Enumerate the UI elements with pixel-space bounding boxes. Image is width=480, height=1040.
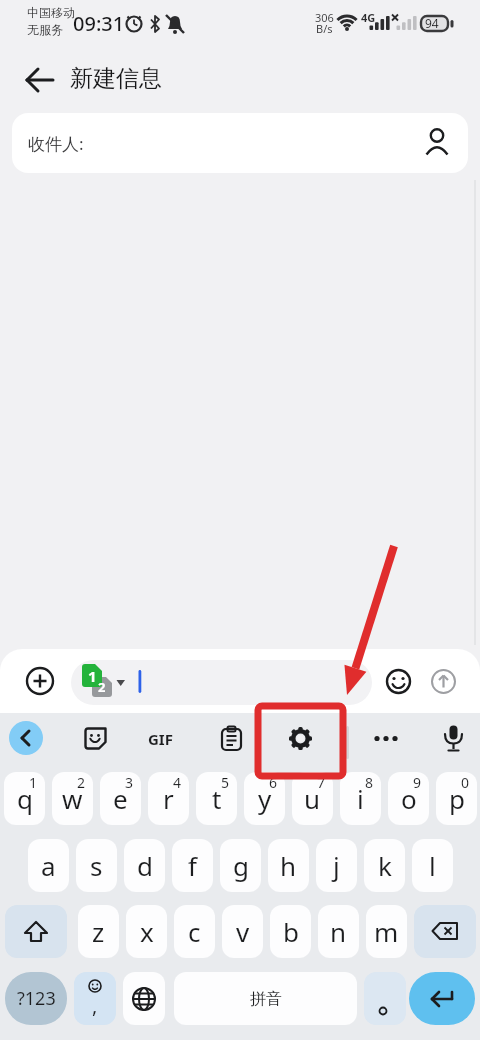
button[interactable] <box>289 727 312 750</box>
staticText: m <box>374 914 399 949</box>
button[interactable] <box>414 905 476 958</box>
staticText: r <box>163 781 174 816</box>
staticText: 6 <box>269 773 278 792</box>
staticText: 4 <box>173 773 182 792</box>
staticText: 收件人: <box>28 132 84 155</box>
staticText: GIF <box>148 729 173 749</box>
staticText: f <box>188 848 197 883</box>
button[interactable]: a <box>28 839 69 892</box>
button[interactable]: , <box>74 972 116 1025</box>
staticText: x <box>140 914 154 949</box>
button[interactable]: t <box>196 772 237 825</box>
staticText: q <box>17 781 33 816</box>
staticText: t <box>212 781 222 816</box>
button[interactable]: z <box>78 905 119 958</box>
staticText: u <box>304 781 321 816</box>
staticText: s <box>90 848 103 883</box>
staticText: 94 <box>425 15 439 31</box>
staticText: 306 <box>315 10 334 25</box>
staticText: d <box>137 848 153 883</box>
staticText: 09:31 <box>73 10 125 37</box>
button[interactable]: j <box>316 839 357 892</box>
button[interactable]: s <box>76 839 117 892</box>
staticText: h <box>280 848 297 883</box>
staticText: 9 <box>413 773 422 792</box>
button[interactable]: q <box>4 772 45 825</box>
button[interactable] <box>431 669 456 694</box>
button[interactable]: y <box>244 772 285 825</box>
button[interactable]: e <box>100 772 141 825</box>
staticText: 新建信息 <box>70 64 162 93</box>
button[interactable]: GIF <box>148 729 173 749</box>
button[interactable]: w <box>52 772 93 825</box>
staticText: 5 <box>221 773 230 792</box>
staticText: e <box>113 781 128 816</box>
button[interactable] <box>220 726 243 751</box>
staticText: w <box>62 781 83 816</box>
staticText: i <box>357 781 364 816</box>
button[interactable] <box>84 727 107 750</box>
button[interactable]: h <box>268 839 309 892</box>
button[interactable] <box>443 725 464 752</box>
button[interactable]: k <box>364 839 405 892</box>
button[interactable] <box>364 972 406 1025</box>
button[interactable]: b <box>270 905 311 958</box>
button[interactable] <box>5 905 67 958</box>
button[interactable] <box>26 667 54 695</box>
button[interactable]: r <box>148 772 189 825</box>
button[interactable]: f <box>172 839 213 892</box>
staticText: 无服务 <box>27 22 63 37</box>
staticText: 2 <box>98 678 106 696</box>
button[interactable]: o <box>388 772 429 825</box>
staticText: 7 <box>317 773 326 792</box>
button[interactable]: i <box>340 772 381 825</box>
staticText: o <box>401 781 417 816</box>
staticText: 拼音 <box>250 989 282 1009</box>
staticText: 1 <box>29 773 38 792</box>
button[interactable]: 1 <box>71 660 372 705</box>
staticText: 0 <box>461 773 470 792</box>
staticText: p <box>449 781 465 816</box>
button[interactable]: d <box>124 839 165 892</box>
staticText: n <box>330 914 347 949</box>
staticText: z <box>92 914 105 949</box>
button[interactable] <box>9 721 43 755</box>
button[interactable]: ?123 <box>5 972 67 1025</box>
staticText: 2 <box>77 773 86 792</box>
button[interactable]: m <box>366 905 407 958</box>
button[interactable] <box>386 669 411 694</box>
button[interactable]: 收件人: <box>12 113 468 173</box>
staticText: c <box>188 914 201 949</box>
staticText: , <box>92 992 98 1019</box>
staticText: k <box>378 848 392 883</box>
staticText: v <box>236 914 250 949</box>
button[interactable]: u <box>292 772 333 825</box>
button[interactable] <box>20 60 60 100</box>
button[interactable] <box>123 972 165 1025</box>
staticText: ?123 <box>17 986 56 1011</box>
button[interactable]: l <box>412 839 453 892</box>
button[interactable]: x <box>126 905 167 958</box>
staticText: l <box>429 848 436 883</box>
staticText: 1 <box>88 666 97 686</box>
staticText: y <box>258 781 272 816</box>
staticText: B/s <box>316 21 333 36</box>
button[interactable]: c <box>174 905 215 958</box>
staticText: a <box>41 848 56 883</box>
button[interactable] <box>372 727 402 750</box>
staticText: 8 <box>365 773 374 792</box>
button[interactable]: 拼音 <box>174 972 357 1025</box>
button[interactable]: g <box>220 839 261 892</box>
staticText: b <box>283 914 299 949</box>
staticText: 4G <box>361 10 376 25</box>
staticText: 3 <box>125 773 134 792</box>
staticText: g <box>233 848 249 883</box>
button[interactable] <box>409 972 475 1025</box>
button[interactable]: p <box>436 772 477 825</box>
staticText: 中国移动 <box>27 5 75 20</box>
button[interactable]: n <box>318 905 359 958</box>
staticText: j <box>333 848 340 883</box>
button[interactable]: v <box>222 905 263 958</box>
